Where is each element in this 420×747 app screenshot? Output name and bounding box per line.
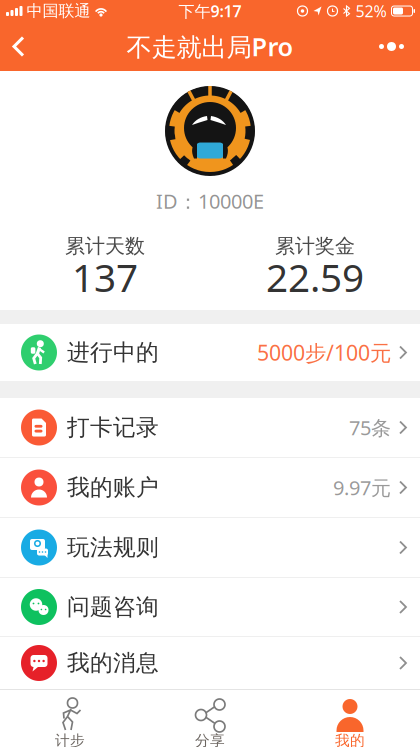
button[interactable]: 我的账户 [0,458,420,517]
staticText: ID：10000E [156,188,264,214]
button[interactable]: 计步 [0,698,140,747]
staticText: 我的 [335,731,365,747]
staticText: 5000步/100元 [257,338,391,367]
staticText: 分享 [195,731,225,747]
staticText: 打卡记录 [67,414,159,441]
button[interactable]: 玩法规则 [0,518,420,577]
button[interactable]: 进行中的 [0,324,420,381]
staticText: 我的账户 [67,474,159,501]
staticText: 累计奖金 [275,234,355,258]
button[interactable]: 打卡记录 [0,398,420,457]
staticText: 进行中的 [67,339,159,366]
button[interactable] [379,26,420,67]
button[interactable]: 分享 [140,698,280,747]
staticText: 9.97元 [333,474,391,501]
button[interactable] [0,24,26,68]
staticText: 22.59 [266,251,364,303]
button[interactable]: 问题咨询 [0,578,420,636]
staticText: 我的消息 [67,649,159,677]
staticText: 问题咨询 [67,593,159,621]
staticText: 累计天数 [65,234,145,258]
staticText: 玩法规则 [67,534,159,561]
staticText: 52% [355,0,386,22]
staticText: 不走就出局Pro [126,30,293,63]
staticText: 计步 [55,731,85,747]
staticText: 中国联通 [26,1,90,21]
button[interactable]: 我的消息 [0,637,420,689]
staticText: 下午9:17 [178,0,241,22]
staticText: 75条 [349,414,391,441]
staticText: 137 [72,251,138,303]
button[interactable]: 我的 [280,698,420,747]
